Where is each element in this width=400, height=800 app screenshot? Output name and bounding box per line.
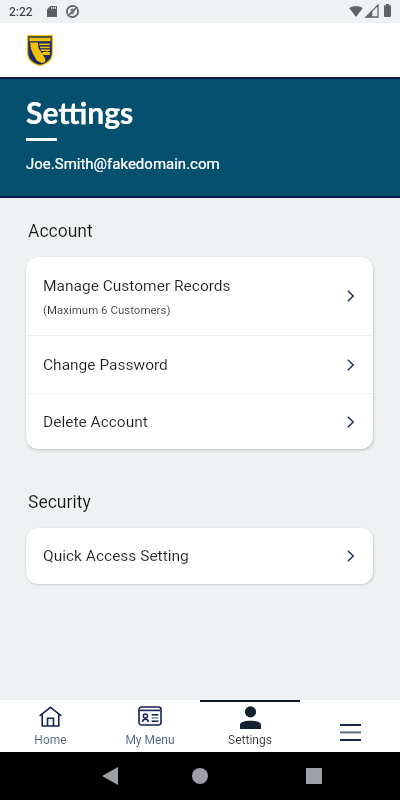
staticText: Quick Access Setting	[43, 547, 189, 565]
staticText: My Menu	[125, 733, 175, 747]
staticText: Manage Customer Records	[43, 277, 231, 295]
button[interactable]: Settings	[200, 700, 300, 752]
staticText: Change Password	[43, 356, 168, 374]
staticText: Home	[34, 733, 67, 747]
button[interactable]: Home	[0, 700, 100, 752]
staticText: Delete Account	[43, 413, 148, 431]
staticText: Account	[28, 221, 93, 242]
button[interactable]: Delete Account	[26, 394, 373, 449]
button[interactable]: More options	[300, 700, 400, 752]
staticText: Joe.Smith@fakedomain.com	[26, 155, 220, 173]
button[interactable]: My Menu	[100, 700, 200, 752]
staticText: Security	[28, 492, 91, 513]
staticText: Settings	[26, 94, 134, 130]
staticText: Settings	[228, 733, 272, 747]
staticText: (Maximum 6 Customers)	[43, 303, 171, 316]
button[interactable]: Change Password	[26, 336, 373, 393]
button[interactable]: Manage Customer Records	[26, 257, 373, 335]
button[interactable]: Quick Access Setting	[26, 528, 373, 584]
staticText: 2:22	[9, 5, 33, 19]
